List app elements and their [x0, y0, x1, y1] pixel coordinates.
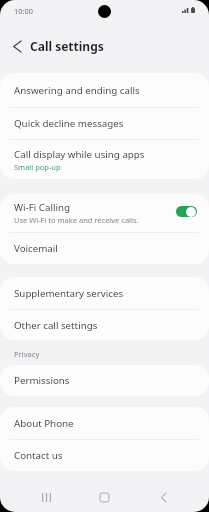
staticText: Call display while using apps: [14, 148, 145, 161]
button[interactable]: Back: [7, 36, 27, 56]
button[interactable]: Recents: [30, 481, 63, 512]
button[interactable]: Wi-Fi Calling toggle: [176, 206, 197, 217]
staticText: About Phone: [14, 417, 74, 430]
button[interactable]: Answering and ending calls: [0, 73, 209, 107]
staticText: Other call settings: [14, 319, 98, 332]
button[interactable]: Other call settings: [0, 310, 209, 340]
staticText: Permissions: [14, 374, 70, 387]
staticText: Wi-Fi Calling: [14, 201, 71, 214]
staticText: Small pop-up: [14, 162, 61, 172]
button[interactable]: Voicemail: [0, 233, 209, 264]
staticText: Call settings: [30, 38, 104, 54]
button[interactable]: Contact us: [0, 440, 209, 471]
button[interactable]: Quick decline messages: [0, 108, 209, 139]
staticText: Supplementary services: [14, 287, 124, 300]
staticText: Quick decline messages: [14, 117, 124, 130]
button[interactable]: Permissions: [0, 365, 209, 396]
staticText: 10:00: [14, 6, 33, 16]
button[interactable]: About Phone: [0, 407, 209, 439]
button[interactable]: Home: [88, 481, 121, 512]
button[interactable]: Back: [147, 481, 180, 512]
button[interactable]: Call display while using apps: [0, 140, 209, 179]
staticText: Use Wi-Fi to make and receive calls.: [14, 215, 139, 225]
staticText: Answering and ending calls: [14, 84, 140, 97]
button[interactable]: Supplementary services: [0, 277, 209, 309]
button[interactable]: Wi-Fi Calling: [0, 194, 209, 232]
staticText: Voicemail: [14, 242, 58, 255]
staticText: Privacy: [14, 349, 40, 359]
staticText: Contact us: [14, 449, 63, 462]
